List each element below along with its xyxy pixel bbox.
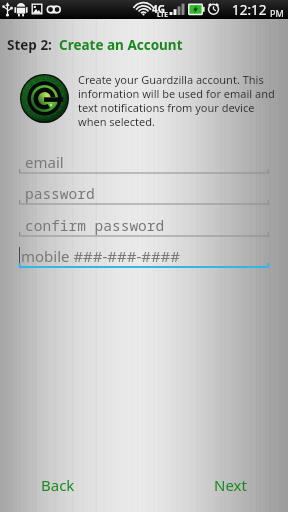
staticText: Back xyxy=(41,475,75,495)
button[interactable]: password xyxy=(19,181,269,209)
button[interactable]: mobile ###-###-#### xyxy=(19,244,269,272)
button[interactable]: Next xyxy=(204,470,257,500)
button[interactable]: email xyxy=(19,150,269,178)
staticText: Create your Guardzilla account. This inf… xyxy=(78,72,280,129)
staticText: Step 2: xyxy=(7,36,52,54)
staticText: Create an Account xyxy=(59,36,183,54)
button[interactable]: Back xyxy=(31,470,85,500)
staticText: mobile ###-###-#### xyxy=(21,246,180,266)
staticText: LTE xyxy=(157,10,168,19)
staticText: 12:12 xyxy=(232,1,267,19)
staticText: 4G xyxy=(152,2,165,16)
staticText: PM xyxy=(270,7,284,19)
staticText: email xyxy=(25,152,64,172)
button[interactable]: confirm password xyxy=(19,213,269,241)
staticText: confirm password xyxy=(25,215,165,235)
staticText: password xyxy=(25,183,95,203)
staticText: Next xyxy=(214,475,247,495)
